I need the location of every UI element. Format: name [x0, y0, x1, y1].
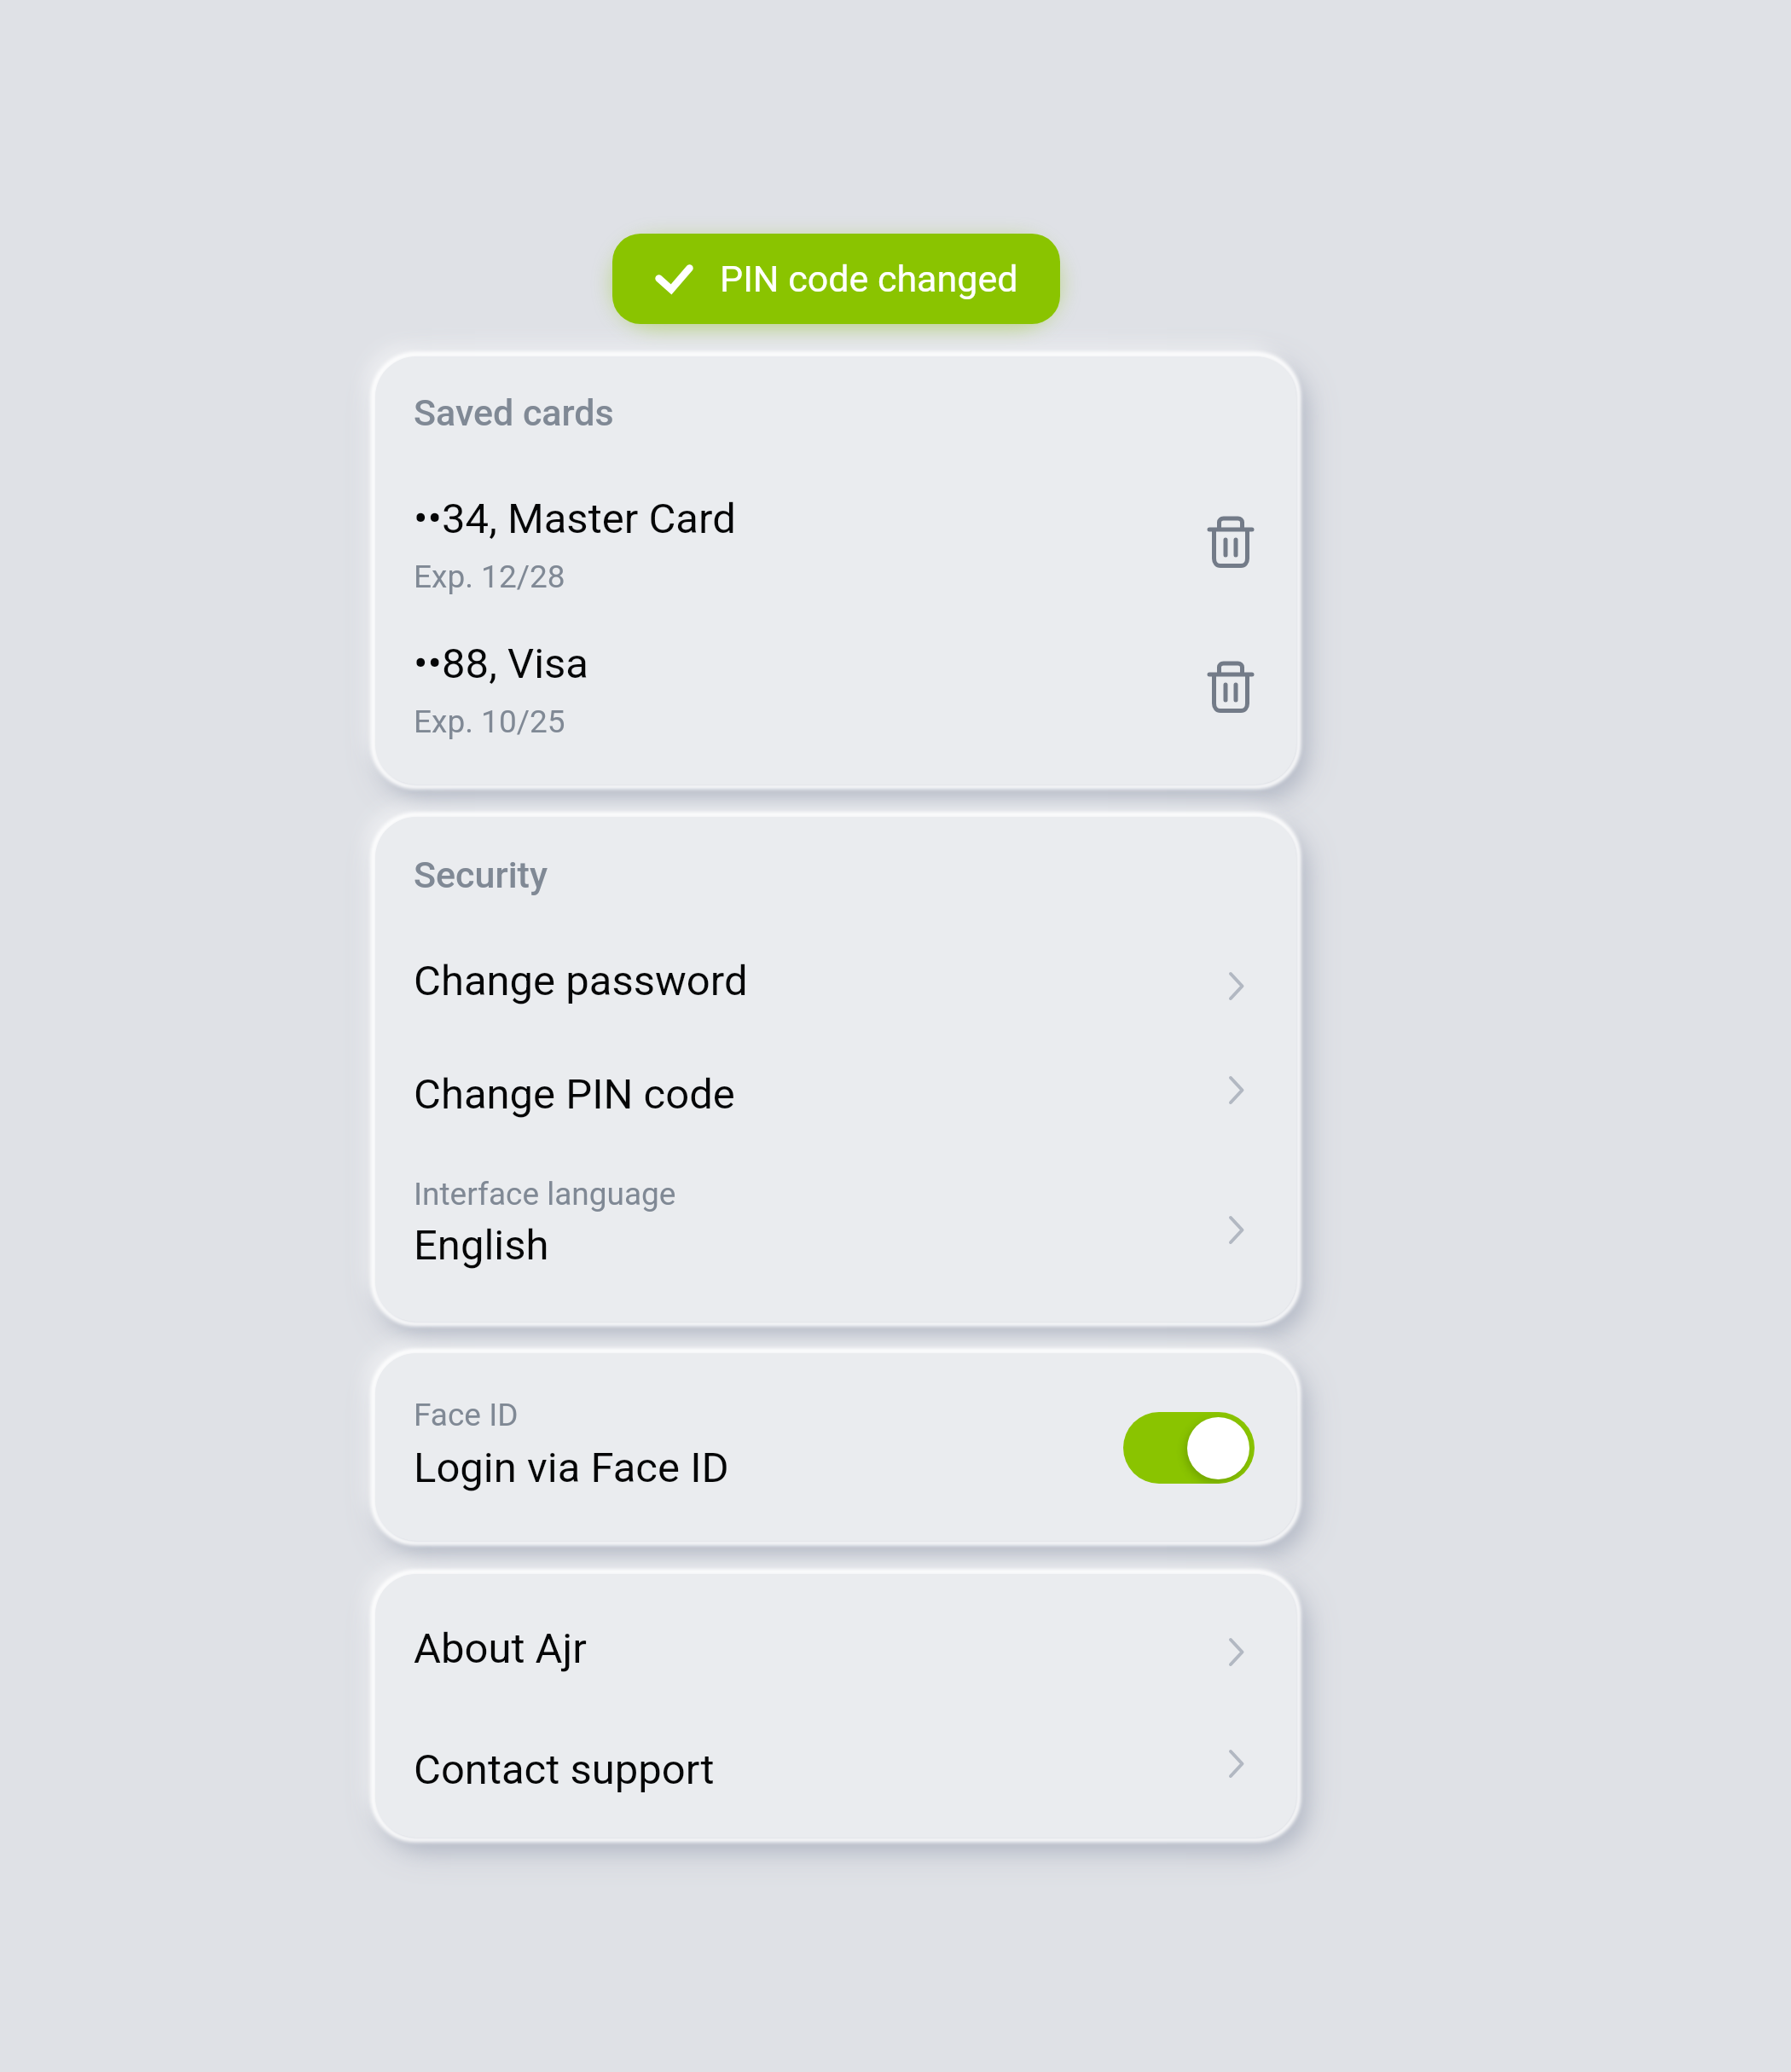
staticText: Saved cards — [414, 391, 614, 434]
button[interactable]: Login via Face ID toggle, on — [1123, 1412, 1255, 1484]
button[interactable]: Interface language — [375, 1160, 1296, 1296]
staticText: Exp. 10/25 — [414, 703, 565, 740]
staticText: Contact support — [414, 1745, 715, 1794]
staticText: Security — [414, 854, 548, 896]
staticText: About Ajr — [414, 1624, 587, 1673]
staticText: ••88, Visa — [414, 640, 588, 688]
button[interactable]: Contact support — [375, 1714, 1296, 1833]
staticText: Change password — [414, 957, 748, 1005]
staticText: PIN code changed — [720, 258, 1018, 300]
staticText: Face ID — [414, 1397, 519, 1433]
staticText: Change PIN code — [414, 1070, 735, 1119]
button[interactable]: ••34, Master Card — [375, 465, 1296, 597]
button[interactable]: Delete card — [1188, 645, 1273, 730]
button[interactable]: Delete card — [1188, 500, 1273, 585]
button[interactable]: About Ajr — [375, 1595, 1296, 1714]
button[interactable]: Change PIN code — [375, 1042, 1296, 1149]
button[interactable]: Change password — [375, 929, 1296, 1036]
button[interactable]: Face ID — [375, 1353, 1296, 1541]
staticText: Exp. 12/28 — [414, 559, 565, 595]
button[interactable]: ••88, Visa — [375, 610, 1296, 742]
button[interactable]: PIN code changed — [612, 234, 1060, 324]
staticText: Interface language — [414, 1176, 676, 1213]
staticText: English — [414, 1221, 549, 1270]
staticText: ••34, Master Card — [414, 495, 736, 543]
staticText: Login via Face ID — [414, 1444, 729, 1492]
